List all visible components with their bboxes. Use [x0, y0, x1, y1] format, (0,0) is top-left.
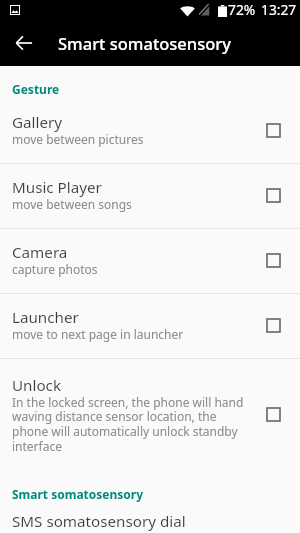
staticText: move between songs [12, 196, 132, 212]
staticText: 72% [228, 0, 256, 19]
staticText: Gallery [12, 112, 62, 133]
staticText: Camera [12, 242, 68, 263]
button[interactable]: Toggle Camera [266, 253, 280, 267]
staticText: Music Player [12, 177, 102, 198]
button[interactable]: Toggle Gallery [266, 123, 280, 137]
staticText: Unlock [12, 375, 61, 396]
button[interactable]: Toggle Unlock [266, 407, 280, 421]
button[interactable]: Unlock [0, 359, 300, 463]
staticText: Gesture [12, 81, 60, 97]
button[interactable]: Back [0, 19, 47, 66]
button[interactable]: Toggle Launcher [266, 318, 280, 332]
staticText: 13:27 [261, 0, 297, 19]
button[interactable]: Toggle Music Player [266, 188, 280, 202]
button[interactable]: Music Player [0, 164, 300, 228]
staticText: Smart somatosensory [12, 486, 144, 502]
button[interactable]: Gallery [0, 99, 300, 163]
staticText: In the locked screen, the phone will han… [12, 394, 249, 455]
staticText: SMS somatosensory dial [12, 511, 186, 532]
button[interactable]: Camera [0, 229, 300, 293]
staticText: Launcher [12, 307, 79, 328]
button[interactable]: Launcher [0, 294, 300, 358]
staticText: move between pictures [12, 131, 144, 147]
staticText: Smart somatosensory [58, 32, 231, 54]
staticText: capture photos [12, 261, 98, 277]
staticText: move to next page in launcher [12, 326, 184, 342]
button[interactable]: SMS somatosensory dial [0, 503, 300, 533]
